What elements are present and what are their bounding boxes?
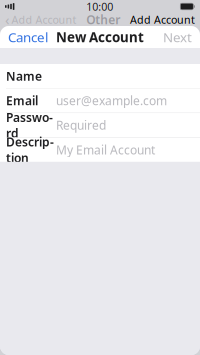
button[interactable]: Name xyxy=(0,64,200,89)
button[interactable]: Next xyxy=(156,23,199,51)
staticText: Add Account xyxy=(11,12,76,27)
staticText: Email xyxy=(6,93,38,108)
staticText: Required xyxy=(56,117,106,133)
staticText: Password xyxy=(6,109,53,141)
staticText: Other xyxy=(86,11,120,27)
staticText: user@example.com xyxy=(56,93,167,108)
staticText: Add Account xyxy=(130,12,195,27)
staticText: New Account xyxy=(56,28,144,46)
button[interactable]: Description xyxy=(0,138,200,162)
button[interactable]: Email xyxy=(0,89,200,113)
staticText: Name xyxy=(6,68,42,84)
staticText: Next xyxy=(163,28,192,46)
staticText: My Email Account xyxy=(56,142,155,158)
button[interactable]: Cancel xyxy=(1,23,55,51)
staticText: Description xyxy=(6,134,54,166)
button[interactable]: Password xyxy=(0,113,200,138)
staticText: ‹ xyxy=(5,10,10,29)
staticText: 10:00 xyxy=(86,0,113,14)
staticText: Cancel xyxy=(8,28,48,46)
